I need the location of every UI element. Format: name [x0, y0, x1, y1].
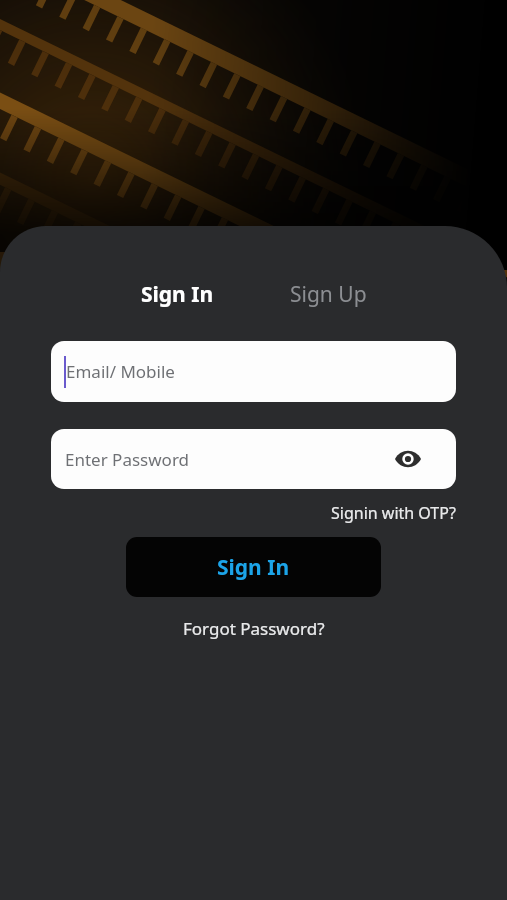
- staticText: Sign Up: [290, 280, 367, 309]
- staticText: Email/ Mobile: [66, 360, 175, 383]
- button[interactable]: Sign Up: [278, 274, 379, 315]
- button[interactable]: Show password: [391, 442, 425, 476]
- staticText: Signin with OTP?: [331, 502, 456, 524]
- button[interactable]: Forgot Password?: [177, 611, 331, 646]
- button[interactable]: Sign In: [126, 537, 381, 597]
- button[interactable]: Email/ Mobile: [51, 341, 456, 402]
- button[interactable]: Enter Password: [51, 429, 456, 489]
- button[interactable]: Signin with OTP?: [327, 498, 460, 528]
- staticText: Sign In: [217, 553, 290, 582]
- staticText: Enter Password: [65, 448, 190, 471]
- staticText: Sign In: [141, 280, 214, 309]
- button[interactable]: Sign In: [129, 274, 226, 315]
- staticText: Forgot Password?: [183, 617, 325, 640]
